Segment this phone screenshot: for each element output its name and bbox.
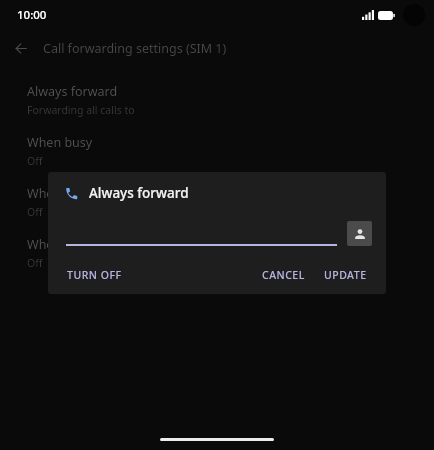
staticText: Always forward bbox=[89, 184, 189, 202]
staticText: CANCEL bbox=[262, 268, 305, 282]
staticText: When unreachable bbox=[27, 236, 138, 253]
button[interactable]: CANCEL bbox=[254, 262, 313, 288]
staticText: Off bbox=[27, 256, 43, 270]
staticText: 10:00 bbox=[17, 7, 47, 23]
button[interactable]: TURN OFF bbox=[59, 262, 130, 288]
staticText: Off bbox=[27, 154, 43, 168]
staticText: When busy bbox=[27, 134, 93, 151]
staticText: Forwarding all calls to bbox=[27, 103, 135, 117]
button[interactable]: Back bbox=[8, 35, 34, 61]
staticText: TURN OFF bbox=[67, 268, 122, 282]
button[interactable]: Choose contact bbox=[347, 221, 372, 246]
staticText: When unanswered bbox=[27, 185, 138, 202]
button[interactable]: UPDATE bbox=[316, 262, 375, 288]
button[interactable] bbox=[66, 218, 337, 246]
staticText: Call forwarding settings (SIM 1) bbox=[43, 40, 227, 57]
staticText: Off bbox=[27, 205, 43, 219]
staticText: Always forward bbox=[27, 83, 118, 100]
staticText: UPDATE bbox=[324, 268, 367, 282]
